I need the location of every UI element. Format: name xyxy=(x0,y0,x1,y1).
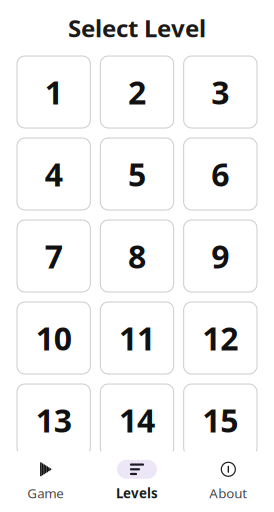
staticText: Select Level xyxy=(68,12,206,44)
staticText: 13 xyxy=(36,399,72,441)
staticText: 15 xyxy=(202,399,238,441)
staticText: 12 xyxy=(202,317,238,359)
button[interactable]: 2 xyxy=(100,56,174,128)
staticText: 5 xyxy=(128,153,146,195)
button[interactable]: 9 xyxy=(184,220,257,292)
button[interactable]: 8 xyxy=(100,220,174,292)
staticText: Game xyxy=(27,484,64,502)
staticText: 10 xyxy=(36,317,72,359)
button[interactable]: About xyxy=(183,457,274,504)
staticText: 11 xyxy=(119,317,155,359)
button[interactable]: 6 xyxy=(184,138,257,210)
staticText: 8 xyxy=(128,235,146,277)
staticText: 7 xyxy=(45,235,63,277)
staticText: 14 xyxy=(119,399,155,441)
staticText: 4 xyxy=(45,153,63,195)
staticText: 2 xyxy=(128,71,146,113)
button[interactable]: 10 xyxy=(17,302,90,374)
staticText: About xyxy=(209,484,247,502)
staticText: 3 xyxy=(211,71,229,113)
button[interactable]: Levels xyxy=(91,457,183,504)
button[interactable]: 7 xyxy=(17,220,90,292)
button[interactable]: Game xyxy=(0,457,91,504)
button[interactable]: 14 xyxy=(100,384,174,456)
button[interactable]: 4 xyxy=(17,138,90,210)
button[interactable]: 15 xyxy=(184,384,257,456)
staticText: Levels xyxy=(116,484,158,502)
button[interactable]: 11 xyxy=(100,302,174,374)
button[interactable]: 3 xyxy=(184,56,257,128)
button[interactable]: 5 xyxy=(100,138,174,210)
staticText: 1 xyxy=(45,71,63,113)
button[interactable]: 1 xyxy=(17,56,90,128)
button[interactable]: 13 xyxy=(17,384,90,456)
button[interactable]: 12 xyxy=(184,302,257,374)
staticText: 9 xyxy=(211,235,229,277)
staticText: 6 xyxy=(211,153,229,195)
